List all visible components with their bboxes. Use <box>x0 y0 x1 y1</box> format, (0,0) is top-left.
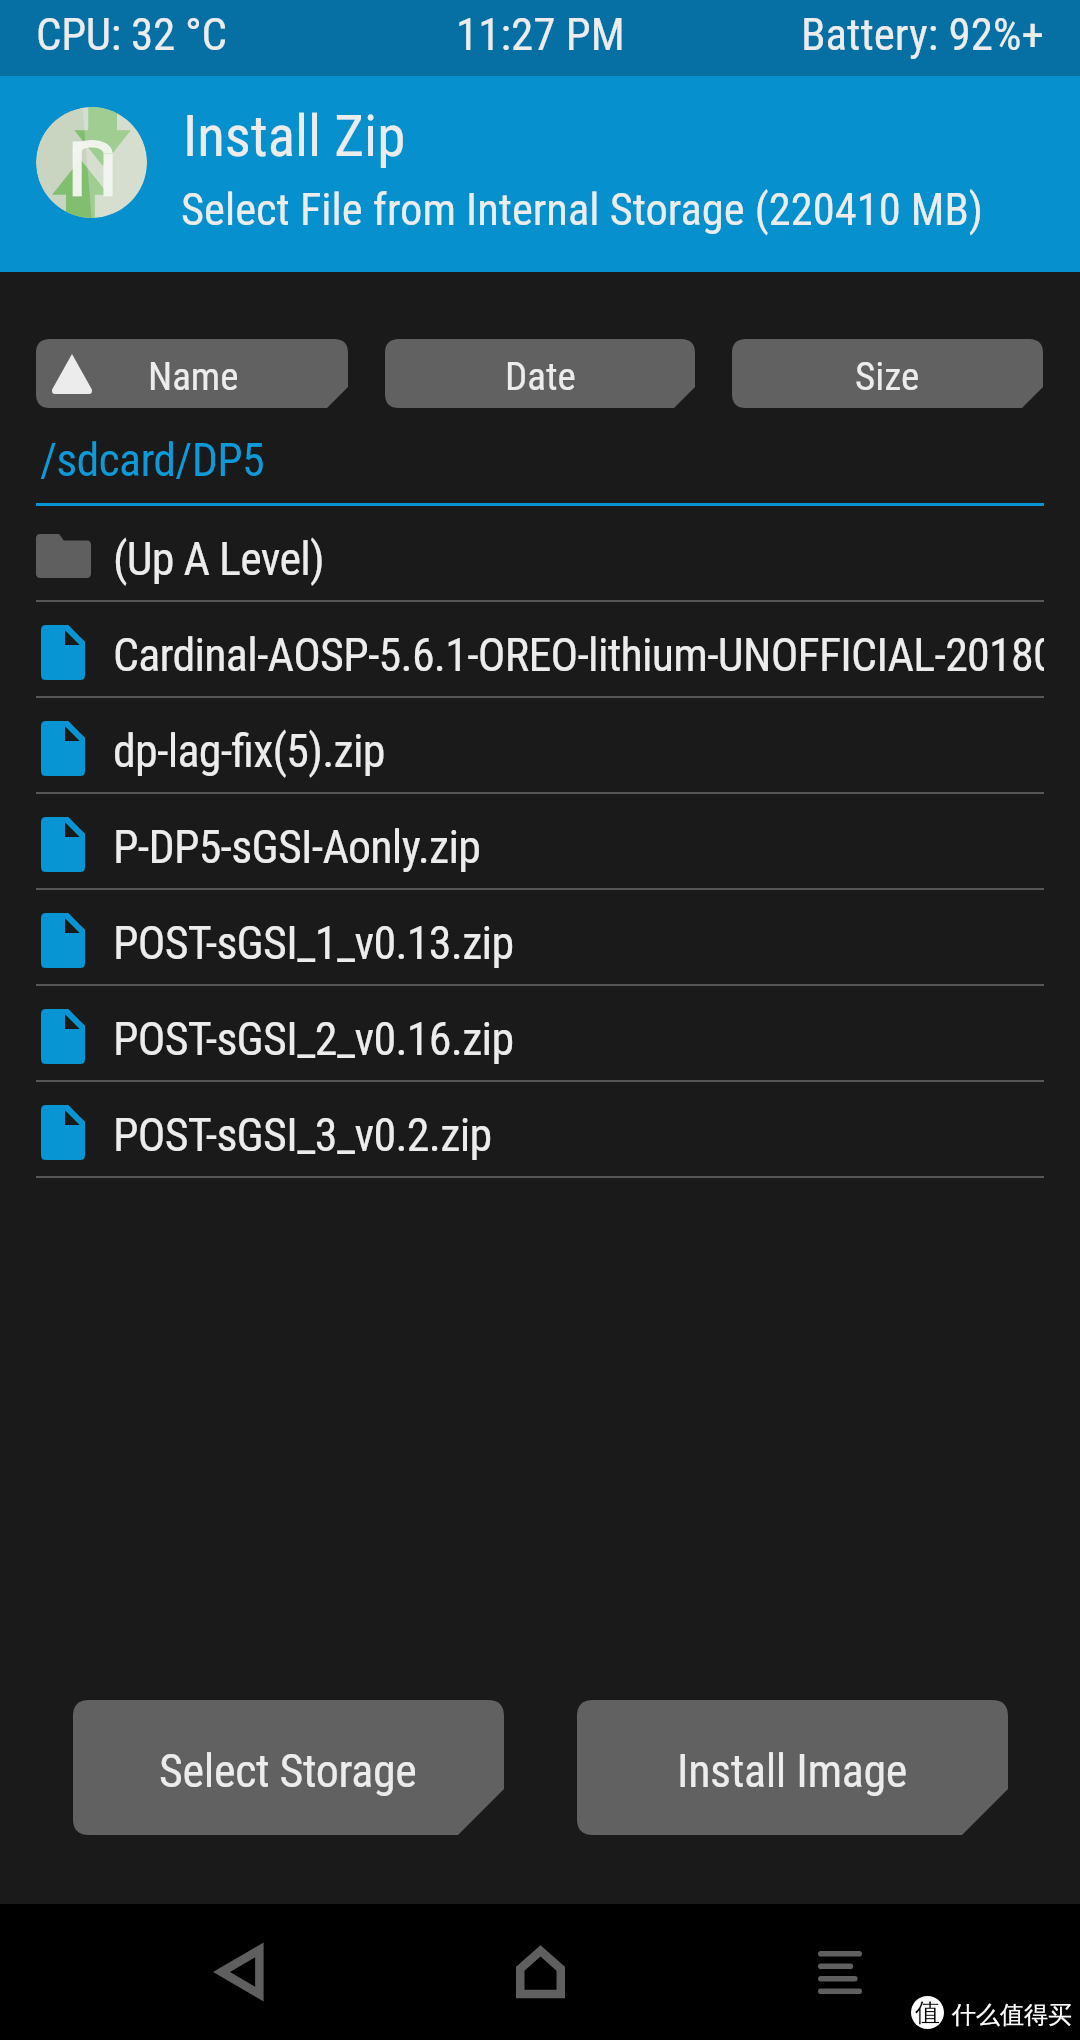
staticText: P-DP5-sGSI-Aonly.zip <box>113 820 481 874</box>
staticText: dp-lag-fix(5).zip <box>113 724 385 778</box>
staticText: Select File from Internal Storage (22041… <box>181 184 983 236</box>
staticText: Install Image <box>677 1744 907 1798</box>
staticText: POST-sGSI_3_v0.2.zip <box>113 1108 492 1162</box>
staticText: Select Storage <box>159 1744 417 1798</box>
staticText: (Up A Level) <box>113 532 324 586</box>
button[interactable]: Home <box>468 1904 612 2040</box>
staticText: 什么值得买 <box>952 2000 1072 2030</box>
staticText: 值 <box>915 1997 940 2028</box>
button[interactable]: Size <box>732 339 1043 408</box>
button[interactable]: dp-lag-fix(5).zip <box>0 698 1080 794</box>
staticText: /sdcard/DP5 <box>40 433 264 487</box>
staticText: POST-sGSI_1_v0.13.zip <box>113 916 514 970</box>
staticText: Install Zip <box>183 103 406 170</box>
button[interactable]: Date <box>385 339 695 408</box>
button[interactable]: Back <box>168 1904 312 2040</box>
button[interactable]: P-DP5-sGSI-Aonly.zip <box>0 794 1080 890</box>
staticText: 11:27 PM <box>456 8 625 61</box>
button[interactable]: POST-sGSI_2_v0.16.zip <box>0 986 1080 1082</box>
button[interactable]: POST-sGSI_3_v0.2.zip <box>0 1082 1080 1178</box>
button[interactable]: Select Storage <box>73 1700 504 1835</box>
button[interactable]: (Up A Level) <box>0 506 1080 602</box>
staticText: Size <box>855 354 920 400</box>
button[interactable]: Name <box>36 339 348 408</box>
staticText: POST-sGSI_2_v0.16.zip <box>113 1012 514 1066</box>
button[interactable]: Install Image <box>577 1700 1008 1835</box>
staticText: CPU: 32 °C <box>36 8 227 61</box>
staticText: Date <box>505 354 576 400</box>
button[interactable]: POST-sGSI_1_v0.13.zip <box>0 890 1080 986</box>
button[interactable]: Cardinal-AOSP-5.6.1-OREO-lithium-UNOFFIC… <box>0 602 1080 698</box>
staticText: Cardinal-AOSP-5.6.1-OREO-lithium-UNOFFIC… <box>113 628 1044 682</box>
staticText: Name <box>148 354 239 400</box>
button[interactable]: Menu <box>768 1904 912 2040</box>
staticText: Battery: 92%+ <box>801 8 1044 61</box>
